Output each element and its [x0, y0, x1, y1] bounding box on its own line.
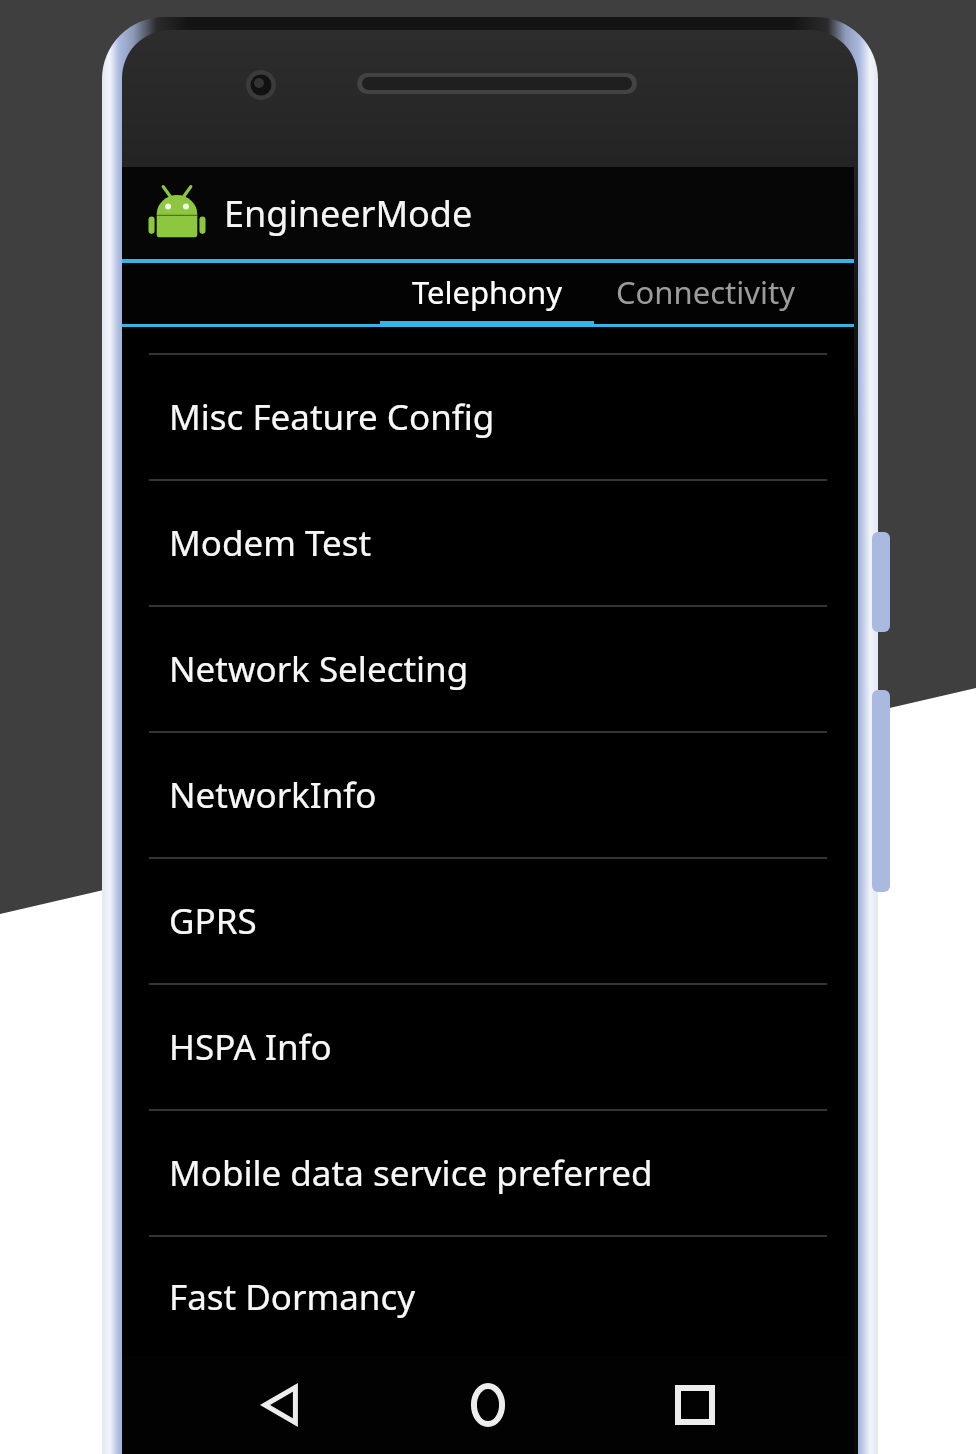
staticText: Misc Feature Config	[169, 393, 495, 441]
button[interactable]: Fast Dormancy	[122, 1237, 854, 1356]
staticText: Connectivity	[616, 271, 795, 313]
staticText: Fast Dormancy	[169, 1273, 416, 1321]
button[interactable]: HSPA Info	[122, 985, 854, 1109]
button[interactable]: GPRS	[122, 859, 854, 983]
button[interactable]: Home	[440, 1357, 536, 1453]
staticText: Telephony	[412, 271, 562, 313]
button[interactable]: Misc Feature Config	[122, 355, 854, 479]
button[interactable]: NetworkInfo	[122, 733, 854, 857]
button[interactable]: EngineerMode	[122, 167, 854, 259]
button[interactable]: Connectivity	[594, 263, 854, 321]
staticText: Mobile data service preferred	[169, 1149, 653, 1197]
staticText: EngineerMode	[224, 189, 473, 238]
staticText: Modem Test	[169, 519, 372, 567]
button[interactable]: Network Selecting	[122, 607, 854, 731]
staticText: NetworkInfo	[169, 771, 377, 819]
button[interactable]: Modem Test	[122, 481, 854, 605]
button[interactable]: Telephony	[380, 263, 594, 321]
button[interactable]: Recents	[647, 1357, 743, 1453]
button[interactable]: Mobile data service preferred	[122, 1111, 854, 1235]
staticText: Network Selecting	[169, 645, 469, 693]
staticText: HSPA Info	[169, 1023, 332, 1071]
staticText: GPRS	[169, 897, 257, 945]
button[interactable]: Back	[233, 1357, 329, 1453]
